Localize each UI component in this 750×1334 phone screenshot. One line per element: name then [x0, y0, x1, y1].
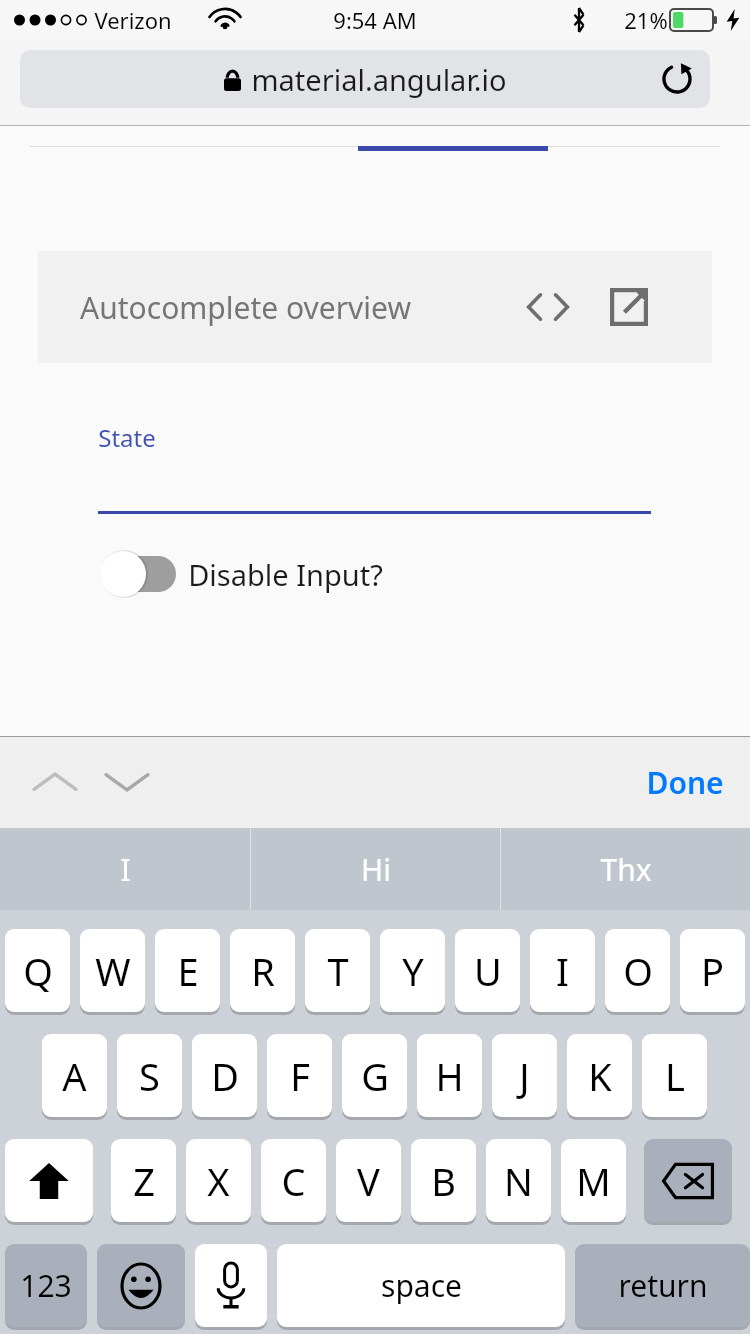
staticText: F — [290, 1050, 310, 1102]
staticText: W — [95, 945, 131, 997]
button[interactable]: W — [80, 929, 145, 1012]
staticText: B — [431, 1155, 456, 1207]
staticText: I — [556, 945, 569, 997]
staticText: H — [435, 1050, 464, 1102]
staticText: P — [701, 945, 724, 997]
button[interactable]: C — [261, 1139, 326, 1222]
staticText: V — [357, 1155, 380, 1207]
button[interactable]: P — [680, 929, 745, 1012]
staticText: L — [665, 1050, 685, 1102]
staticText: Q — [23, 945, 53, 997]
button[interactable]: Q — [5, 929, 70, 1012]
staticText: Thx — [600, 849, 652, 890]
staticText: Hi — [361, 849, 391, 890]
button[interactable]: X — [186, 1139, 251, 1222]
button[interactable]: Previous field — [32, 768, 78, 796]
button[interactable]: U — [455, 929, 520, 1012]
staticText: Autocomplete overview — [80, 287, 411, 328]
staticText: M — [576, 1155, 611, 1207]
button[interactable]: V — [336, 1139, 401, 1222]
staticText: return — [618, 1265, 708, 1306]
button[interactable]: T — [305, 929, 370, 1012]
staticText: Verizon — [94, 5, 172, 35]
button[interactable]: F — [267, 1034, 332, 1117]
staticText: space — [381, 1265, 462, 1306]
button[interactable]: Next field — [104, 768, 150, 796]
staticText: 123 — [20, 1265, 72, 1306]
other: View source — [526, 291, 570, 323]
button[interactable]: Y — [380, 929, 445, 1012]
button[interactable]: I — [0, 828, 250, 910]
staticText: 9:54 AM — [333, 5, 417, 35]
staticText: O — [623, 945, 653, 997]
staticText: D — [211, 1050, 239, 1102]
button[interactable]: Disable Input? — [98, 548, 383, 600]
button[interactable]: H — [417, 1034, 482, 1117]
button[interactable]: Autocomplete overview — [38, 251, 712, 363]
button[interactable]: R — [230, 929, 295, 1012]
button[interactable]: space — [277, 1244, 565, 1327]
button[interactable]: B — [411, 1139, 476, 1222]
button[interactable]: O — [605, 929, 670, 1012]
button[interactable]: J — [492, 1034, 557, 1117]
button[interactable]: Thx — [501, 828, 750, 910]
button[interactable]: I — [530, 929, 595, 1012]
button[interactable]: Emoji — [97, 1244, 185, 1327]
button[interactable]: Hi — [251, 828, 500, 910]
staticText: S — [139, 1050, 160, 1102]
other: Reload — [662, 64, 692, 94]
staticText: Y — [402, 945, 424, 997]
staticText: X — [207, 1155, 230, 1207]
button[interactable]: S — [117, 1034, 182, 1117]
button[interactable]: N — [486, 1139, 551, 1222]
button[interactable]: Backspace — [644, 1139, 732, 1222]
staticText: N — [504, 1155, 533, 1207]
staticText: State — [98, 421, 156, 454]
button[interactable]: A — [42, 1034, 107, 1117]
button[interactable]: G — [342, 1034, 407, 1117]
staticText: A — [62, 1050, 87, 1102]
button[interactable]: K — [567, 1034, 632, 1117]
button[interactable]: D — [192, 1034, 257, 1117]
staticText: J — [519, 1050, 530, 1102]
staticText: material.angular.io — [251, 60, 507, 99]
staticText: T — [327, 945, 349, 997]
other: Open in new window — [610, 288, 648, 326]
button[interactable]: M — [561, 1139, 626, 1222]
staticText: I — [120, 849, 131, 890]
staticText: E — [177, 945, 199, 997]
staticText: K — [588, 1050, 612, 1102]
staticText: 21% — [624, 5, 668, 35]
button[interactable]: material.angular.io — [20, 50, 710, 108]
button[interactable]: return — [575, 1244, 750, 1327]
staticText: G — [361, 1050, 389, 1102]
button[interactable]: Shift — [5, 1139, 93, 1222]
button[interactable]: Done — [646, 762, 724, 803]
staticText: C — [281, 1155, 306, 1207]
button[interactable]: Z — [111, 1139, 176, 1222]
staticText: U — [474, 945, 502, 997]
staticText: Z — [133, 1155, 155, 1207]
staticText: R — [251, 945, 275, 997]
button[interactable]: E — [155, 929, 220, 1012]
button[interactable]: L — [642, 1034, 707, 1117]
staticText: Done — [646, 762, 724, 803]
button[interactable]: 123 — [5, 1244, 87, 1327]
button[interactable]: Dictation — [195, 1244, 267, 1327]
staticText: Disable Input? — [188, 555, 383, 594]
